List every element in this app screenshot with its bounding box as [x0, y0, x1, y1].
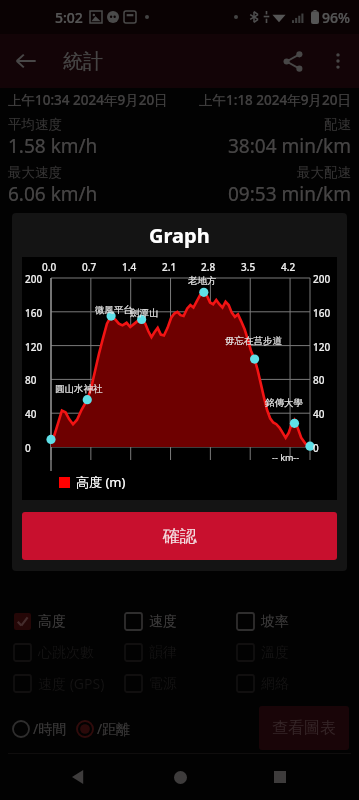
button[interactable]: Back: [58, 756, 100, 798]
staticText: 圓山水神社: [55, 383, 103, 395]
staticText: 38:04 min/km: [228, 133, 351, 159]
staticText: 網絡: [261, 675, 289, 693]
button[interactable]: /時間: [12, 719, 67, 738]
staticText: -- km--: [272, 451, 300, 463]
staticText: 200: [313, 272, 331, 286]
staticText: 速度 (GPS): [38, 674, 105, 693]
staticText: 2.8: [201, 260, 216, 274]
button[interactable]: 溫度: [237, 637, 349, 668]
button[interactable]: Back: [0, 35, 52, 87]
button[interactable]: 高度: [14, 606, 125, 637]
staticText: /時間: [33, 719, 67, 738]
button[interactable]: More options: [317, 40, 359, 82]
staticText: 上午1:18 2024年9月20日: [199, 91, 351, 109]
button[interactable]: /距離: [76, 719, 131, 738]
staticText: 平均速度: [8, 116, 62, 133]
button[interactable]: 確認: [22, 512, 337, 560]
staticText: 0.0: [42, 260, 57, 274]
staticText: /距離: [97, 719, 131, 738]
button[interactable]: Share: [269, 37, 317, 85]
staticText: 微風平台: [95, 304, 133, 316]
staticText: 確認: [163, 526, 197, 547]
button[interactable]: Home: [159, 756, 201, 798]
button[interactable]: 韻律: [125, 637, 237, 668]
staticText: 5:02: [55, 8, 83, 27]
staticText: 40: [313, 407, 325, 421]
staticText: 80: [313, 373, 325, 387]
staticText: 80: [25, 373, 37, 387]
staticText: 2.1: [162, 260, 177, 274]
staticText: 配速: [324, 116, 351, 133]
staticText: 200: [25, 272, 43, 286]
button[interactable]: 網絡: [237, 668, 349, 699]
staticText: 高度 (m): [76, 473, 126, 491]
staticText: 毋忘在莒步道: [225, 335, 282, 347]
staticText: 3.5: [241, 260, 256, 274]
button[interactable]: 速度 (GPS): [14, 668, 125, 699]
staticText: 銘傳大學: [265, 397, 303, 409]
staticText: 劍潭山: [130, 307, 159, 319]
staticText: 最大速度: [8, 164, 62, 181]
staticText: Graph: [149, 222, 210, 249]
staticText: 電源: [149, 675, 177, 693]
staticText: 韻律: [149, 644, 177, 662]
staticText: 老地方: [188, 275, 217, 287]
staticText: 查看圖表: [272, 718, 336, 738]
button[interactable]: 心跳次數: [14, 637, 125, 668]
staticText: 6.06 km/h: [8, 181, 98, 207]
staticText: 120: [25, 340, 43, 354]
staticText: 120: [313, 340, 331, 354]
button[interactable]: 電源: [125, 668, 237, 699]
staticText: 1.58 km/h: [8, 133, 98, 159]
button[interactable]: Recents: [259, 756, 301, 798]
staticText: 160: [25, 306, 43, 320]
staticText: 0: [313, 441, 319, 455]
staticText: 上午10:34 2024年9月20日: [8, 91, 168, 109]
staticText: 高度: [38, 613, 66, 631]
button[interactable]: 速度: [125, 606, 237, 637]
staticText: 溫度: [261, 644, 289, 662]
staticText: 160: [313, 306, 331, 320]
staticText: 4.2: [281, 260, 296, 274]
staticText: 40: [25, 407, 37, 421]
staticText: 0: [25, 441, 31, 455]
staticText: 心跳次數: [38, 644, 94, 662]
button[interactable]: 查看圖表: [259, 706, 349, 750]
staticText: 統計: [63, 49, 103, 74]
button[interactable]: 坡率: [237, 606, 349, 637]
staticText: 坡率: [261, 613, 289, 631]
staticText: 09:53 min/km: [228, 181, 351, 207]
staticText: 96%: [322, 8, 350, 27]
staticText: 1.4: [122, 260, 137, 274]
staticText: 最大配速: [297, 164, 351, 181]
staticText: 0.7: [82, 260, 97, 274]
staticText: 速度: [149, 613, 177, 631]
